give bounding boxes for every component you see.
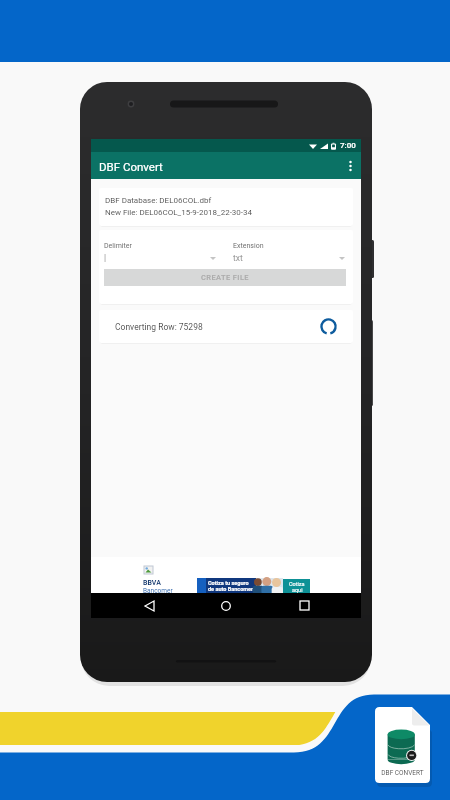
staticText: Converting Row: 75298: [115, 322, 203, 332]
staticText: CREATE FILE: [201, 273, 249, 282]
staticText: BBVA: [143, 579, 161, 587]
button[interactable]: Recent apps: [284, 593, 324, 618]
button[interactable]: Extension: [233, 242, 346, 263]
staticText: New File: DEL06COL_15-9-2018_22-30-34: [105, 208, 253, 217]
staticText: Extension: [233, 242, 264, 250]
button[interactable]: CREATE FILE: [104, 269, 346, 286]
button[interactable]: Delimiter: [104, 242, 217, 263]
staticText: 7:00: [340, 141, 356, 150]
button[interactable]: Home: [206, 593, 246, 618]
staticText: Delimiter: [104, 242, 132, 250]
staticText: Cotiza tu seguro: [208, 580, 249, 586]
staticText: |: [104, 253, 107, 263]
staticText: DBF CONVERT: [381, 769, 424, 777]
staticText: DBF Convert: [99, 160, 163, 173]
staticText: Bancomer: [143, 587, 173, 595]
staticText: Cotiza: [289, 581, 305, 587]
staticText: de auto Bancomer: [208, 586, 253, 592]
staticText: aqui: [292, 587, 303, 593]
button[interactable]: More options: [339, 152, 361, 179]
button[interactable]: DBF Convert app icon: [375, 707, 430, 783]
staticText: txt: [233, 253, 243, 263]
button[interactable]: Back: [129, 593, 169, 618]
staticText: DBF Database: DEL06COL.dbf: [105, 196, 212, 205]
